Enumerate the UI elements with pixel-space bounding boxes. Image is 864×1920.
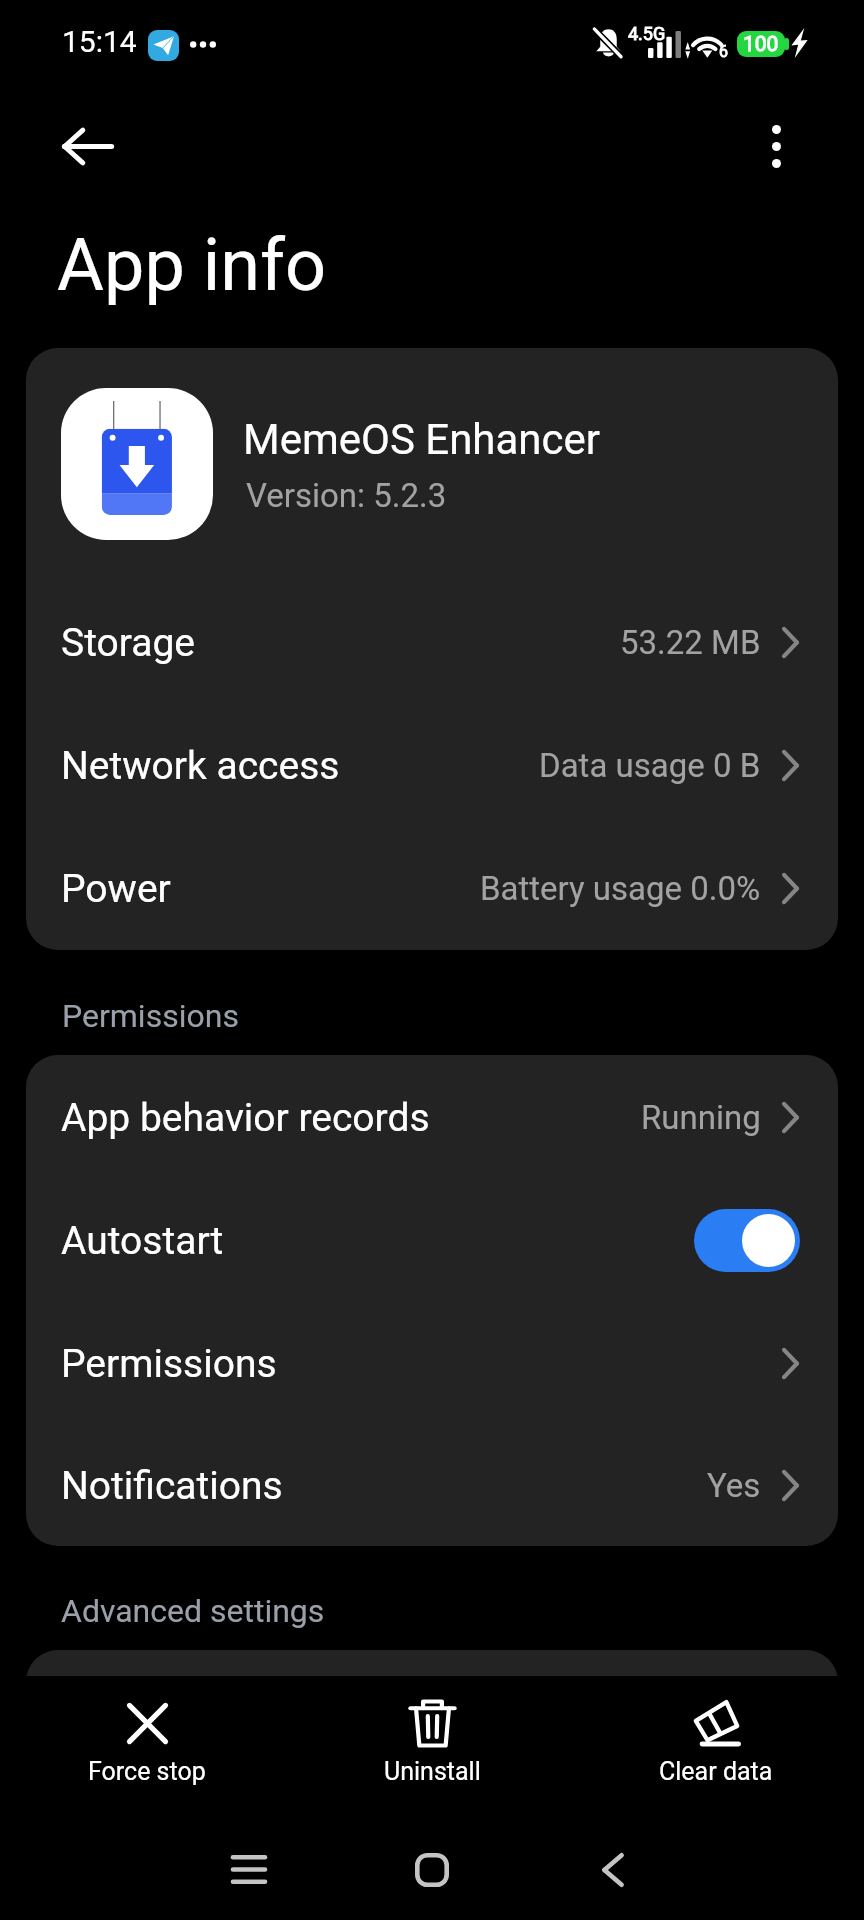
button[interactable]: Back <box>563 1820 663 1920</box>
staticText: Data usage 0 B <box>539 746 761 785</box>
staticText: Yes <box>707 1466 761 1505</box>
button[interactable]: More options <box>733 103 819 189</box>
staticText: Autostart <box>61 1218 224 1264</box>
staticText: Advanced settings <box>61 1592 325 1630</box>
staticText: App info <box>57 223 327 307</box>
button[interactable]: Advanced settings <box>26 1650 838 1770</box>
button[interactable]: Home <box>382 1820 482 1920</box>
staticText: MemeOS Enhancer <box>243 415 601 464</box>
staticText: 6 <box>719 42 728 61</box>
button[interactable]: Recent apps <box>199 1820 299 1920</box>
button[interactable]: Autostart <box>26 1179 838 1302</box>
staticText: 4.5G <box>628 23 666 44</box>
button[interactable]: App behavior records <box>26 1056 838 1179</box>
button[interactable]: Storage <box>26 581 838 704</box>
staticText: 15:14 <box>62 24 137 59</box>
staticText: Network access <box>61 743 340 789</box>
button[interactable]: Back <box>44 102 132 190</box>
staticText: Clear data <box>659 1757 773 1786</box>
staticText: 53.22 MB <box>620 623 761 662</box>
button[interactable]: Power <box>26 827 838 950</box>
staticText: App behavior records <box>61 1095 430 1141</box>
staticText: Notifications <box>61 1463 283 1509</box>
staticText: Battery usage 0.0% <box>480 869 761 908</box>
staticText: Permissions <box>62 997 239 1035</box>
staticText: 100 <box>743 32 779 57</box>
staticText: Version: 5.2.3 <box>246 476 447 515</box>
staticText: Storage <box>61 620 196 666</box>
button[interactable]: Force stop <box>3 1676 291 1820</box>
button[interactable]: Notifications <box>26 1425 838 1546</box>
button[interactable]: Permissions <box>26 1302 838 1425</box>
staticText: Power <box>61 866 171 912</box>
staticText: Uninstall <box>384 1757 481 1786</box>
button[interactable]: Clear data <box>572 1676 860 1820</box>
button[interactable]: Network access <box>26 704 838 827</box>
staticText: Permissions <box>61 1341 277 1387</box>
staticText: Running <box>641 1098 761 1137</box>
staticText: Force stop <box>88 1757 206 1786</box>
button[interactable]: Uninstall <box>288 1676 576 1820</box>
